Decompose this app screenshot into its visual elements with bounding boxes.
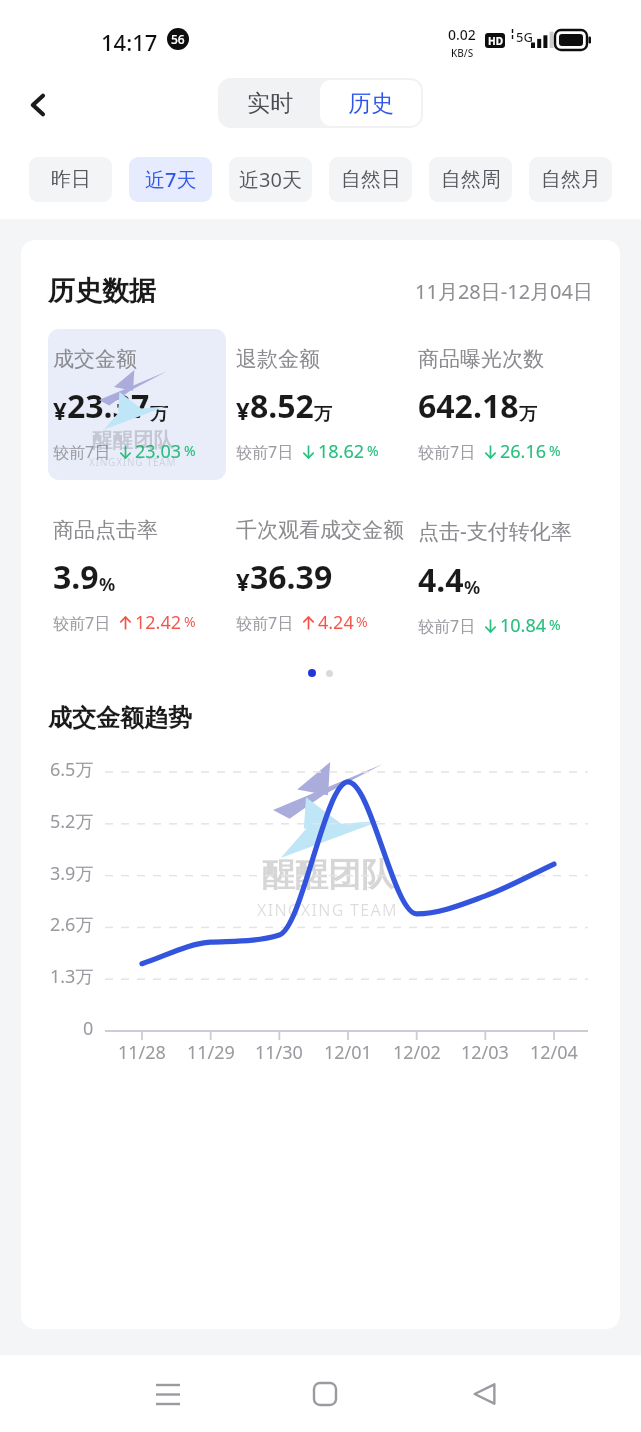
- staticText: 23.03: [135, 439, 182, 464]
- button[interactable]: 商品曝光次数: [418, 346, 608, 464]
- staticText: 4.4: [418, 558, 464, 602]
- staticText: 历史: [348, 89, 394, 118]
- staticText: 醒醒团队: [262, 854, 394, 896]
- staticText: 12/01: [324, 1040, 372, 1065]
- staticText: 11月28日-12月04日: [415, 278, 593, 305]
- staticText: 自然日: [341, 167, 401, 192]
- staticText: 18.62: [318, 439, 365, 464]
- staticText: 3.9: [53, 555, 99, 599]
- staticText: 自然周: [441, 167, 501, 192]
- staticText: XINGXING TEAM: [89, 455, 177, 469]
- staticText: 商品点击率: [53, 517, 158, 543]
- staticText: 较前7日: [236, 441, 294, 463]
- staticText: 26.16: [500, 439, 547, 464]
- staticText: 8.52: [250, 384, 314, 428]
- button[interactable]: 自然月: [529, 157, 612, 202]
- staticText: 退款金额: [236, 346, 320, 372]
- staticText: 642.18: [418, 384, 519, 428]
- button[interactable]: 历史: [320, 80, 421, 126]
- staticText: %: [549, 441, 561, 460]
- staticText: 万: [314, 403, 332, 426]
- staticText: 醒醒团队: [92, 427, 174, 453]
- button[interactable]: 商品点击率: [53, 517, 236, 635]
- staticText: 万: [519, 403, 537, 426]
- button[interactable]: 近30天: [229, 157, 312, 202]
- staticText: 近7天: [145, 166, 197, 193]
- staticText: 4.24: [318, 610, 354, 635]
- staticText: 14:17: [101, 27, 158, 57]
- staticText: %: [99, 572, 116, 597]
- button[interactable]: 自然日: [329, 157, 412, 202]
- staticText: 6.5万: [50, 757, 94, 782]
- staticText: 商品曝光次数: [418, 346, 544, 372]
- staticText: 实时: [247, 89, 293, 118]
- button[interactable]: 实时: [220, 80, 320, 126]
- staticText: 12.42: [135, 610, 182, 635]
- staticText: 较前7日: [53, 441, 111, 463]
- staticText: 0: [83, 1016, 94, 1041]
- staticText: %: [184, 441, 196, 460]
- staticText: 成交金额: [53, 346, 137, 372]
- staticText: 12/04: [530, 1040, 578, 1065]
- staticText: 1.3万: [50, 964, 94, 989]
- staticText: ¥: [53, 394, 67, 427]
- staticText: %: [184, 612, 196, 631]
- staticText: 较前7日: [418, 615, 476, 637]
- staticText: 2.6万: [50, 912, 94, 937]
- staticText: 36.39: [250, 555, 333, 599]
- staticText: %: [356, 612, 368, 631]
- button[interactable]: 成交金额: [53, 346, 231, 464]
- button[interactable]: 退款金额: [236, 346, 418, 464]
- staticText: 千次观看成交金额: [236, 517, 404, 543]
- staticText: 较前7日: [236, 612, 294, 634]
- staticText: 自然月: [541, 167, 601, 192]
- staticText: %: [464, 575, 481, 600]
- staticText: 10.84: [500, 613, 547, 638]
- button[interactable]: Back: [461, 1371, 507, 1417]
- staticText: 56: [171, 31, 185, 47]
- staticText: 11/30: [255, 1040, 303, 1065]
- staticText: 成交金额趋势: [48, 703, 192, 733]
- button[interactable]: 自然周: [429, 157, 512, 202]
- staticText: 昨日: [51, 167, 91, 192]
- staticText: 5.2万: [50, 809, 94, 834]
- staticText: 23.37: [67, 384, 150, 428]
- staticText: 12/02: [393, 1040, 441, 1065]
- staticText: 历史数据: [48, 274, 156, 308]
- staticText: KB/S: [451, 46, 474, 60]
- button[interactable]: 千次观看成交金额: [236, 517, 418, 635]
- staticText: XINGXING TEAM: [257, 899, 398, 921]
- button[interactable]: 昨日: [29, 157, 112, 202]
- staticText: 近30天: [239, 166, 302, 193]
- button[interactable]: Recent apps: [145, 1371, 191, 1417]
- staticText: 0.02: [448, 25, 476, 44]
- staticText: 12/03: [461, 1040, 509, 1065]
- button[interactable]: Home: [302, 1371, 348, 1417]
- staticText: 3.9万: [50, 861, 94, 886]
- staticText: 5G: [516, 28, 533, 46]
- staticText: %: [367, 441, 379, 460]
- staticText: ¥: [236, 394, 250, 427]
- staticText: %: [549, 615, 561, 634]
- staticText: HD: [488, 34, 503, 48]
- staticText: 点击-支付转化率: [418, 517, 572, 546]
- staticText: 11/28: [118, 1040, 166, 1065]
- staticText: 较前7日: [418, 441, 476, 463]
- button[interactable]: 近7天: [129, 157, 212, 202]
- button[interactable]: 点击-支付转化率: [418, 517, 608, 638]
- button[interactable]: Back: [18, 84, 60, 126]
- staticText: ¥: [236, 565, 250, 598]
- staticText: 万: [150, 403, 168, 426]
- staticText: 较前7日: [53, 612, 111, 634]
- staticText: 11/29: [187, 1040, 235, 1065]
